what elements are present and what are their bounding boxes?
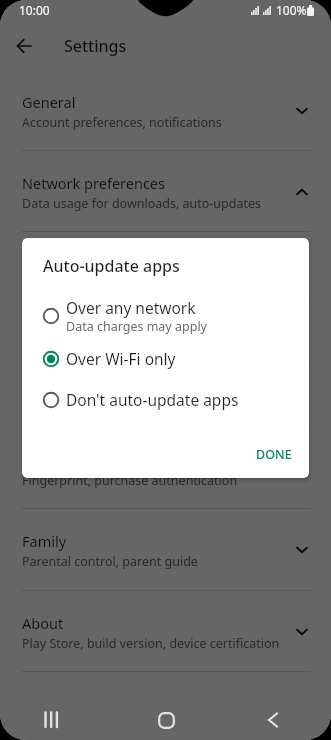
staticText: Network preferences: [22, 173, 165, 193]
staticText: Parental control, parent guide: [22, 553, 198, 570]
button[interactable]: General: [0, 70, 331, 151]
button[interactable]: Navigate up: [9, 31, 39, 61]
button[interactable]: App download preference: [0, 297, 331, 363]
staticText: Data usage for downloads, auto-updates: [22, 195, 262, 212]
button[interactable]: Home: [111, 672, 221, 740]
staticText: Play Store, build version, device certif…: [22, 635, 280, 652]
staticText: Over Wi-Fi only: [66, 348, 176, 369]
staticText: Over Wi-Fi only: [22, 407, 111, 424]
staticText: Data charges may apply: [66, 318, 207, 335]
staticText: App download preference: [22, 319, 198, 339]
staticText: Auto-play videos: [22, 385, 135, 405]
button[interactable]: Family: [0, 509, 331, 591]
staticText: 10:00: [19, 2, 50, 18]
staticText: Over any network: [66, 297, 196, 318]
staticText: Auto-update apps: [22, 254, 144, 274]
staticText: Don't auto-update apps: [66, 389, 239, 410]
staticText: Auto-update apps: [43, 255, 180, 277]
button[interactable]: Back: [221, 672, 331, 740]
staticText: Family: [22, 531, 67, 551]
button[interactable]: DONE: [248, 441, 300, 468]
button[interactable]: Network preferences: [0, 151, 331, 232]
staticText: 100%: [276, 2, 307, 18]
staticText: DONE: [256, 446, 292, 463]
button[interactable]: Auto-play videos: [0, 363, 331, 428]
staticText: Settings: [64, 35, 127, 57]
button[interactable]: Auto-update apps: [0, 232, 331, 297]
button[interactable]: About: [0, 591, 331, 672]
staticText: General: [22, 92, 76, 112]
staticText: Fingerprint, purchase authentication: [22, 472, 238, 489]
button[interactable]: Over Wi-Fi only: [22, 338, 309, 379]
staticText: Over any network: [22, 341, 127, 358]
button[interactable]: Don't auto-update apps: [22, 379, 309, 420]
button[interactable]: Authentication: [0, 428, 331, 509]
button[interactable]: Recent apps: [0, 672, 111, 740]
staticText: About: [22, 613, 64, 633]
button[interactable]: Over any network: [22, 294, 309, 337]
staticText: Account preferences, notifications: [22, 114, 222, 131]
